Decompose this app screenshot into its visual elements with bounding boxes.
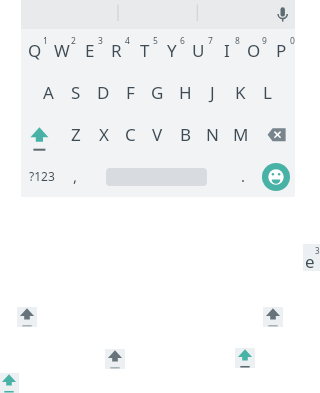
staticText: F <box>126 81 135 104</box>
button[interactable] <box>254 113 295 155</box>
staticText: 0 <box>290 35 295 47</box>
button[interactable]: M <box>227 113 254 155</box>
button[interactable]: S <box>62 71 89 113</box>
staticText: 7 <box>208 35 213 47</box>
button[interactable] <box>21 113 62 155</box>
button[interactable]: I <box>213 29 240 71</box>
staticText: 5 <box>153 35 158 47</box>
staticText: 8 <box>235 35 240 47</box>
button[interactable]: F <box>117 71 144 113</box>
staticText: , <box>73 166 78 186</box>
staticText: ?123 <box>29 168 55 184</box>
staticText: Y <box>167 39 177 62</box>
staticText: C <box>125 123 136 146</box>
staticText: 3 <box>315 245 320 256</box>
staticText: W <box>54 39 70 62</box>
button[interactable]: ?123 <box>21 155 62 197</box>
staticText: B <box>180 123 192 146</box>
staticText: 3 <box>98 35 103 47</box>
staticText: K <box>235 81 246 104</box>
staticText: S <box>71 81 81 104</box>
button[interactable]: P <box>268 29 295 71</box>
staticText: O <box>247 39 261 62</box>
button[interactable]: W <box>48 29 75 71</box>
staticText: 4 <box>125 35 130 47</box>
staticText: V <box>152 123 163 146</box>
button[interactable]: Y <box>158 29 185 71</box>
button[interactable]: V <box>144 113 171 155</box>
button[interactable] <box>268 0 295 29</box>
staticText: J <box>210 81 215 104</box>
button[interactable]: L <box>254 71 281 113</box>
staticText: H <box>179 81 192 104</box>
button[interactable]: T <box>131 29 158 71</box>
staticText: I <box>224 39 230 62</box>
button[interactable]: K <box>227 71 254 113</box>
staticText: L <box>263 81 272 104</box>
button[interactable]: E <box>76 29 103 71</box>
staticText: U <box>192 39 205 62</box>
button[interactable]: U <box>185 29 212 71</box>
staticText: X <box>99 123 109 146</box>
button[interactable]: . <box>230 155 257 197</box>
button[interactable]: G <box>144 71 171 113</box>
staticText: . <box>241 166 246 186</box>
button[interactable]: J <box>199 71 226 113</box>
button[interactable]: , <box>62 155 89 197</box>
button[interactable] <box>262 163 290 191</box>
staticText: Z <box>71 123 81 146</box>
staticText: 9 <box>262 35 267 47</box>
staticText: N <box>206 123 219 146</box>
button[interactable]: D <box>90 71 117 113</box>
staticText: E <box>85 39 95 62</box>
button[interactable]: Z <box>62 113 89 155</box>
staticText: 1 <box>43 35 48 47</box>
button[interactable]: C <box>117 113 144 155</box>
button[interactable]: A <box>35 71 62 113</box>
staticText: T <box>140 39 150 62</box>
button[interactable]: B <box>172 113 199 155</box>
button[interactable]: R <box>103 29 130 71</box>
button[interactable]: O <box>240 29 267 71</box>
staticText: 2 <box>71 35 76 47</box>
button[interactable]: X <box>90 113 117 155</box>
staticText: e <box>305 250 315 273</box>
staticText: D <box>97 81 110 104</box>
staticText: M <box>233 123 249 146</box>
staticText: G <box>151 81 164 104</box>
button[interactable]: N <box>199 113 226 155</box>
staticText: P <box>276 39 287 62</box>
staticText: 6 <box>180 35 185 47</box>
staticText: R <box>111 39 122 62</box>
button[interactable]: H <box>172 71 199 113</box>
button[interactable]: Q <box>21 29 48 71</box>
staticText: Q <box>28 39 42 62</box>
staticText: A <box>43 81 54 104</box>
